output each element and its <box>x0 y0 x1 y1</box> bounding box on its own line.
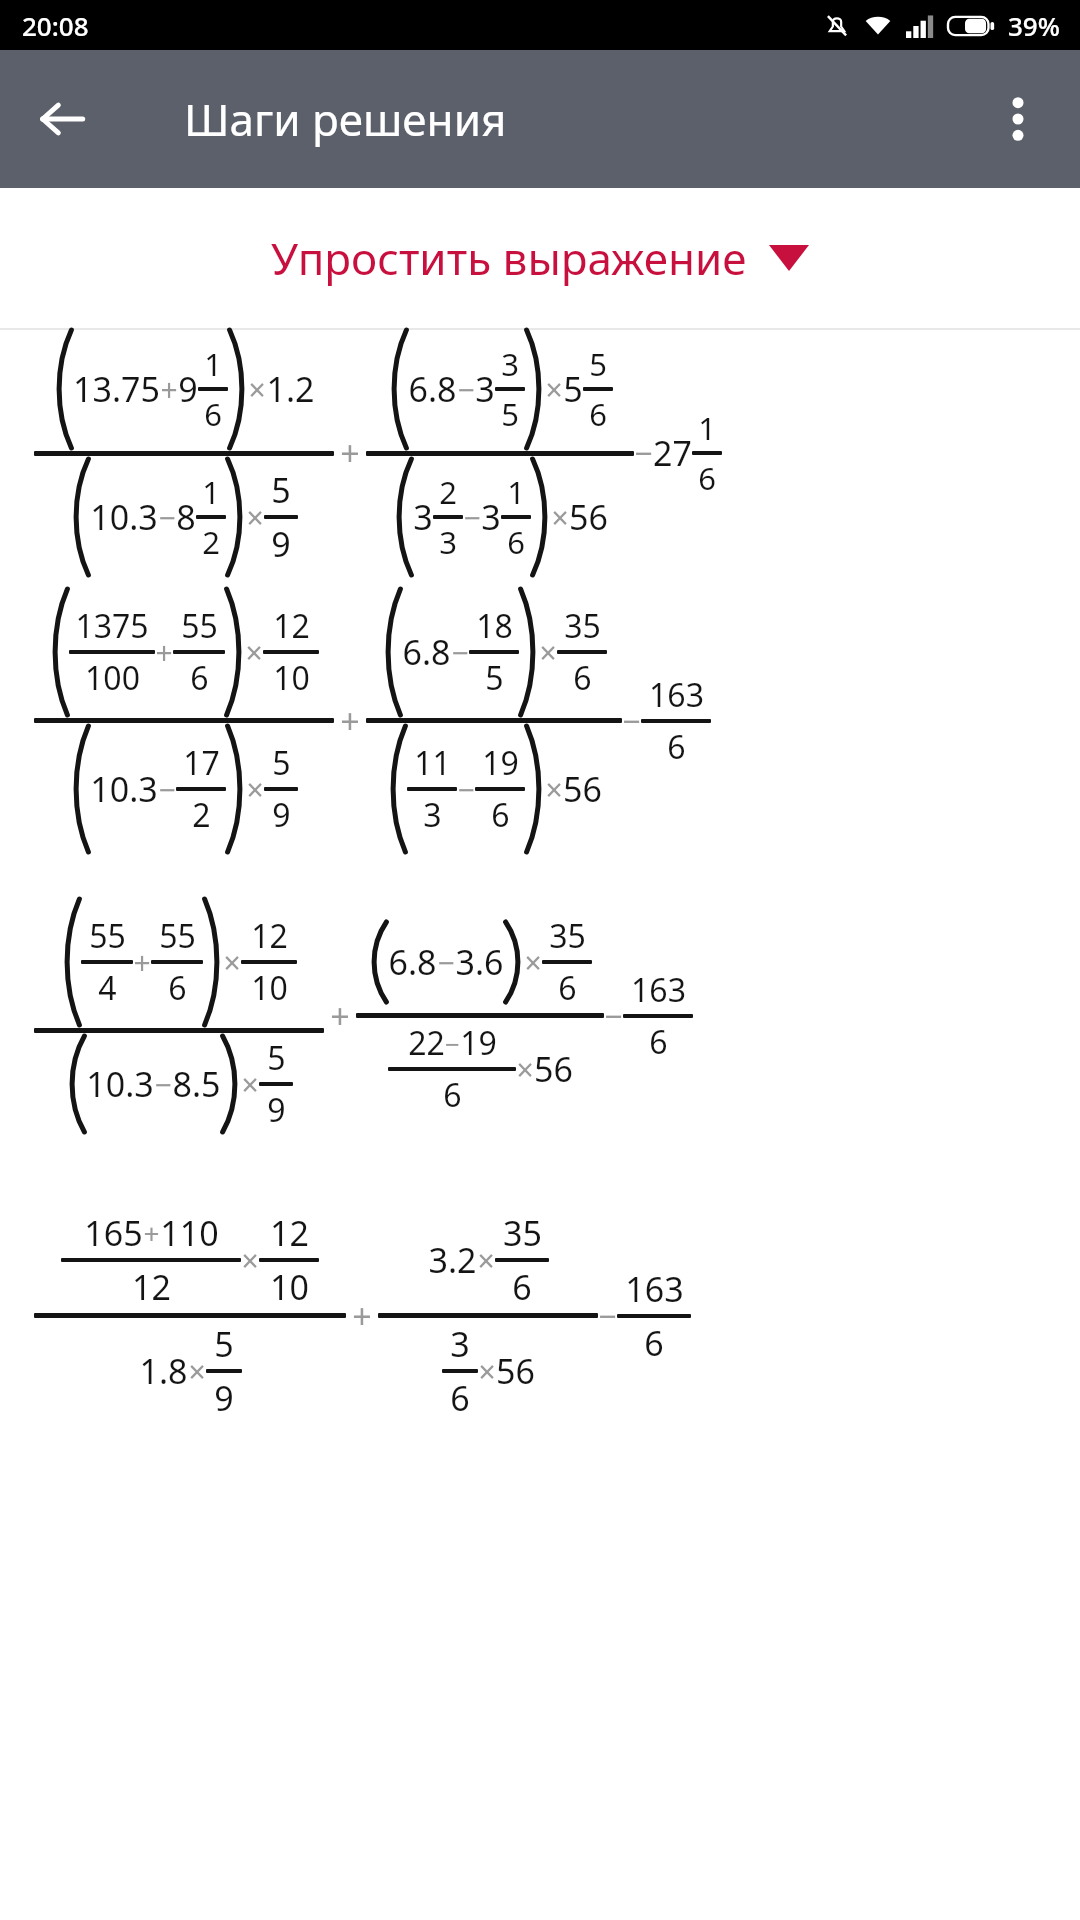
staticText: − <box>598 1294 617 1338</box>
staticText: 3 <box>475 366 495 412</box>
staticText: 6.8 <box>402 629 451 675</box>
staticText: × <box>524 942 542 983</box>
staticText: 5 <box>501 393 519 435</box>
staticText: 2 <box>202 521 220 563</box>
staticText: × <box>478 1351 496 1392</box>
staticText: 22 <box>408 1021 445 1065</box>
staticText: − <box>154 1064 172 1105</box>
staticText: Упростить выражение <box>271 228 747 288</box>
staticText: 6 <box>204 393 222 435</box>
staticText: 35 <box>549 914 586 958</box>
staticText: × <box>539 632 557 673</box>
staticText: 6 <box>168 966 187 1010</box>
staticText: 4 <box>98 966 117 1010</box>
staticText: 1.2 <box>266 366 315 412</box>
staticText: 3.2 <box>428 1237 477 1283</box>
staticText: 10 <box>273 656 310 700</box>
staticText: 8.5 <box>172 1061 221 1107</box>
staticText: 6 <box>644 1320 664 1366</box>
staticText: × <box>246 497 264 538</box>
staticText: 9 <box>178 366 198 412</box>
staticText: 3 <box>423 793 442 837</box>
staticText: × <box>545 369 563 410</box>
staticText: − <box>604 994 623 1038</box>
staticText: 3 <box>501 343 519 385</box>
staticText: − <box>158 769 176 810</box>
staticText: 9 <box>271 521 291 567</box>
staticText: 100 <box>85 656 140 700</box>
staticText: 10.3 <box>90 494 158 540</box>
staticText: − <box>463 497 481 538</box>
staticText: 5 <box>267 1036 286 1080</box>
staticText: 10.3 <box>90 766 158 812</box>
staticText: 55 <box>181 604 218 648</box>
staticText: 8 <box>176 494 196 540</box>
button[interactable]: Back <box>26 83 98 155</box>
staticText: 27 <box>653 430 692 476</box>
staticText: − <box>445 1026 460 1061</box>
staticText: + <box>340 430 360 476</box>
staticText: + <box>155 632 173 673</box>
staticText: 6 <box>698 457 716 499</box>
staticText: 163 <box>649 673 704 717</box>
staticText: 56 <box>534 1046 573 1092</box>
staticText: 3 <box>439 521 457 563</box>
staticText: 6.8 <box>408 366 457 412</box>
staticText: 5 <box>272 741 291 785</box>
staticText: 1375 <box>75 604 149 648</box>
staticText: × <box>246 769 264 810</box>
staticText: 6.8 <box>388 939 437 985</box>
staticText: 5 <box>485 656 504 700</box>
staticText: 1 <box>698 407 716 449</box>
staticText: 39% <box>1008 8 1060 43</box>
staticText: × <box>241 1064 259 1105</box>
staticText: + <box>352 1293 372 1339</box>
staticText: 56 <box>569 494 608 540</box>
button[interactable]: More options <box>982 83 1054 155</box>
staticText: 1 <box>204 343 222 385</box>
staticText: + <box>340 698 360 744</box>
staticText: × <box>248 369 266 410</box>
staticText: 6 <box>558 966 577 1010</box>
staticText: 12 <box>251 914 288 958</box>
staticText: 9 <box>267 1088 286 1132</box>
staticText: 12 <box>270 1210 309 1256</box>
staticText: 110 <box>160 1210 219 1256</box>
staticText: 10 <box>251 966 288 1010</box>
staticText: 35 <box>564 604 601 648</box>
staticText: 35 <box>503 1210 542 1256</box>
staticText: 6 <box>589 393 607 435</box>
staticText: 10 <box>270 1264 309 1310</box>
staticText: 1 <box>507 471 525 513</box>
staticText: 6 <box>450 1375 470 1421</box>
staticText: 165 <box>84 1210 143 1256</box>
staticText: 5 <box>589 343 607 385</box>
staticText: × <box>551 497 569 538</box>
staticText: 13.75 <box>73 366 160 412</box>
staticText: 56 <box>563 766 602 812</box>
staticText: 9 <box>214 1375 234 1421</box>
staticText: 5 <box>271 467 291 513</box>
staticText: + <box>330 993 350 1039</box>
staticText: 17 <box>183 741 220 785</box>
staticText: 18 <box>476 604 513 648</box>
button[interactable]: Упростить выражение <box>0 188 1080 328</box>
staticText: 6 <box>667 725 686 769</box>
staticText: 5 <box>214 1321 234 1367</box>
staticText: × <box>477 1240 495 1281</box>
staticText: 1 <box>202 471 220 513</box>
staticText: × <box>545 769 563 810</box>
staticText: 6 <box>507 521 525 563</box>
staticText: − <box>158 497 176 538</box>
staticText: 6 <box>190 656 209 700</box>
staticText: 2 <box>192 793 211 837</box>
staticText: 55 <box>89 914 126 958</box>
staticText: × <box>516 1049 534 1090</box>
staticText: 3 <box>481 494 501 540</box>
staticText: + <box>160 369 178 410</box>
staticText: 3 <box>413 494 433 540</box>
staticText: − <box>457 769 475 810</box>
staticText: 9 <box>272 793 291 837</box>
staticText: 10.3 <box>86 1061 154 1107</box>
staticText: 19 <box>460 1021 497 1065</box>
